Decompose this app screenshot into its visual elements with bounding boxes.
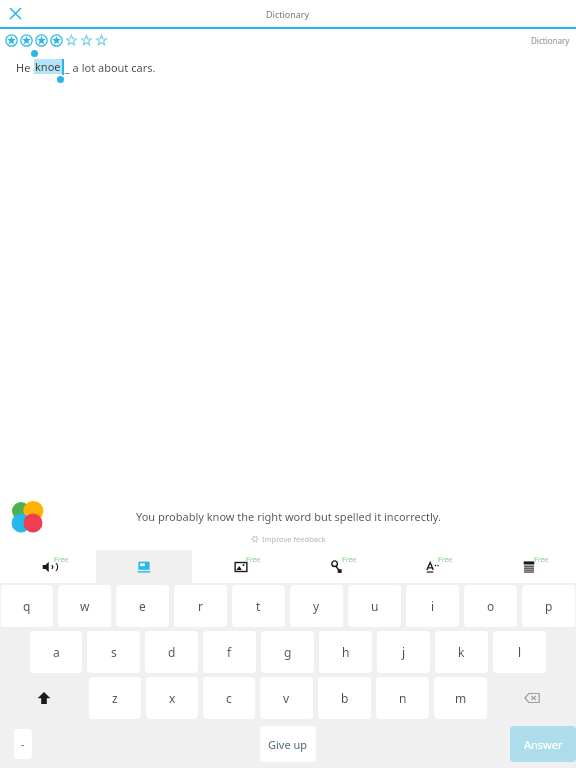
button[interactable]: c — [203, 677, 255, 719]
button[interactable]: u — [348, 585, 401, 627]
button[interactable]: d — [145, 631, 198, 673]
button[interactable]: s — [87, 631, 140, 673]
staticText: z — [112, 690, 118, 706]
button[interactable]: y — [290, 585, 343, 627]
staticText: t — [256, 598, 261, 614]
button[interactable]: t — [232, 585, 285, 627]
staticText: o — [487, 598, 495, 614]
staticText: Free — [54, 555, 69, 565]
button[interactable]: Hint — [288, 550, 384, 583]
staticText: y — [313, 598, 320, 614]
staticText: l — [518, 644, 522, 660]
button[interactable]: Answer — [510, 726, 576, 762]
staticText: j — [402, 644, 406, 660]
staticText: p — [545, 598, 553, 614]
staticText: Answer — [524, 737, 563, 752]
button[interactable]: Screen — [96, 550, 192, 583]
button[interactable]: h — [319, 631, 372, 673]
staticText: Dictionary — [266, 8, 310, 20]
staticText: f — [227, 644, 232, 660]
staticText: Dictionary — [531, 35, 570, 46]
button[interactable]: l — [493, 631, 546, 673]
staticText: e — [139, 598, 146, 614]
button[interactable]: e — [116, 585, 169, 627]
button[interactable]: Sound — [0, 550, 96, 583]
staticText: c — [226, 690, 232, 706]
button[interactable]: p — [522, 585, 575, 627]
button[interactable]: b — [318, 677, 371, 719]
button[interactable]: o — [464, 585, 517, 627]
staticText: i — [431, 598, 435, 614]
button[interactable]: k — [435, 631, 488, 673]
button[interactable]: - — [14, 729, 32, 759]
button[interactable]: Backspace — [488, 677, 576, 719]
button[interactable]: x — [146, 677, 198, 719]
button[interactable]: j — [377, 631, 430, 673]
button[interactable]: a — [30, 631, 82, 673]
staticText: _ a lot about cars. — [62, 60, 156, 75]
button[interactable]: g — [261, 631, 314, 673]
staticText: d — [168, 644, 176, 660]
staticText: Improve feedback — [262, 534, 326, 544]
staticText: n — [399, 690, 407, 706]
button[interactable]: r — [174, 585, 227, 627]
staticText: m — [455, 690, 467, 706]
staticText: r — [198, 598, 203, 614]
button[interactable]: i — [406, 585, 459, 627]
staticText: Free — [438, 555, 453, 565]
staticText: h — [342, 644, 350, 660]
staticText: w — [80, 598, 90, 614]
button[interactable]: Close — [0, 0, 30, 27]
button[interactable]: Image — [192, 550, 288, 583]
staticText: k — [458, 644, 465, 660]
button[interactable]: Shift — [0, 677, 88, 719]
staticText: Free — [246, 555, 261, 565]
staticText: u — [371, 598, 379, 614]
staticText: a — [53, 644, 60, 660]
staticText: He — [16, 60, 34, 75]
staticText: v — [283, 690, 290, 706]
staticText: knoe — [35, 59, 61, 74]
button[interactable]: Improve feedback — [251, 534, 326, 544]
button[interactable]: v — [260, 677, 313, 719]
staticText: Free — [534, 555, 549, 565]
button[interactable]: f — [203, 631, 256, 673]
button[interactable]: w — [58, 585, 111, 627]
staticText: s — [111, 644, 117, 660]
staticText: You probably know the right word but spe… — [136, 509, 441, 524]
staticText: q — [23, 598, 31, 614]
button[interactable]: Translate — [384, 550, 480, 583]
button[interactable]: Give up — [260, 726, 316, 762]
staticText: x — [169, 690, 176, 706]
button[interactable]: z — [89, 677, 141, 719]
button[interactable]: n — [376, 677, 429, 719]
button[interactable]: Notes — [480, 550, 576, 583]
button[interactable]: q — [1, 585, 53, 627]
staticText: Give up — [268, 737, 308, 752]
staticText: - — [21, 737, 25, 751]
staticText: Free — [342, 555, 357, 565]
staticText: g — [284, 644, 292, 660]
staticText: b — [341, 690, 349, 706]
button[interactable]: m — [434, 677, 487, 719]
